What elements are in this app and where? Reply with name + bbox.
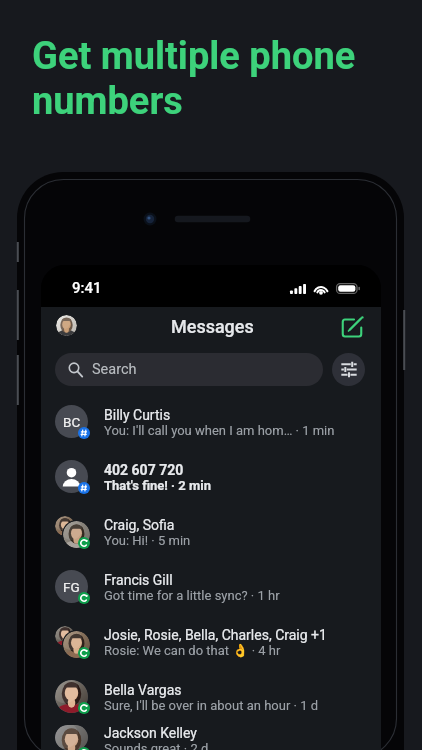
button[interactable]: Jackson Kelley [41,725,381,750]
staticText: Got time for a little sync? · 1 hr [104,588,280,603]
staticText: Sure, I'll be over in about an hour · 1 … [104,698,318,713]
staticText: Jackson Kelley [104,725,197,741]
staticText: FG [63,579,80,595]
button[interactable]: Search [55,353,323,386]
staticText: That's fine! · 2 min [104,478,211,493]
staticText: Get multiple phone [32,34,356,79]
button[interactable]: Josie, Rosie, Bella, Charles, Craig +1 [41,615,381,670]
staticText: Bella Vargas [104,682,182,698]
staticText: 9:41 [72,279,102,297]
staticText: numbers [32,79,183,124]
staticText: Search [92,361,137,378]
staticText: 402 607 720 [104,462,184,478]
button[interactable]: BC [41,395,381,450]
button[interactable]: Bella Vargas [41,670,381,725]
staticText: Messages [171,316,254,337]
staticText: You: I'll call you when I am hom… · 1 mi… [104,423,335,438]
button[interactable]: FG [41,560,381,615]
button[interactable]: Start new chat [341,316,366,341]
staticText: Craig, Sofia [104,517,175,533]
staticText: Billy Curtis [104,407,171,423]
staticText: You: Hi! · 5 min [104,533,191,548]
button[interactable]: Craig, Sofia [41,505,381,560]
staticText: Francis Gill [104,572,173,588]
staticText: BC [63,414,81,430]
button[interactable]: Your account [56,315,77,336]
staticText: Rosie: We can do that 👌 · 4 hr [104,643,281,658]
staticText: Josie, Rosie, Bella, Charles, Craig +1 [104,627,327,643]
staticText: Sounds great · 2 d [104,741,209,750]
button[interactable]: 402 607 720 [41,450,381,505]
button[interactable]: Filter conversations [332,353,365,386]
